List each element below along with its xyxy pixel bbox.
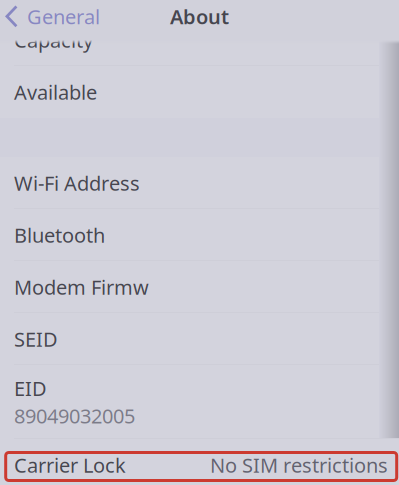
button[interactable]: Bluetooth [0,209,399,261]
staticText: Capacity [14,27,93,53]
staticText: Bluetooth [14,222,105,248]
staticText: Wi-Fi Address [14,170,140,196]
button[interactable]: General [0,0,100,33]
button[interactable]: EID [0,365,399,439]
button[interactable]: SEID [0,313,399,365]
staticText: About [170,3,229,30]
button[interactable]: Available [0,66,399,118]
button[interactable]: Modem Firmw [0,261,399,313]
staticText: Available [14,79,97,105]
staticText: SEID [14,326,58,352]
button[interactable]: Wi-Fi Address [0,157,399,209]
staticText: No SIM restrictions [210,452,388,478]
button[interactable]: Capacity [0,14,399,66]
staticText: 89049032005 [14,402,135,429]
button[interactable]: Carrier Lock [0,439,399,485]
staticText: EID [14,375,47,401]
staticText: Modem Firmw [14,274,149,300]
staticText: General [27,3,100,30]
staticText: Carrier Lock [14,452,126,478]
